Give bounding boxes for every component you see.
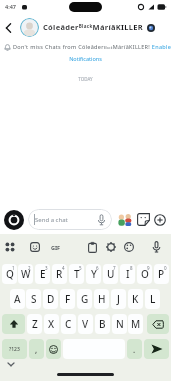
button[interactable]: ?123 [2,339,27,359]
button[interactable]: GIF [51,244,61,251]
button[interactable]: J [111,289,126,309]
staticText: B [99,317,106,331]
staticText: Z [32,317,38,331]
staticText: 9 [147,265,150,271]
button[interactable]: . [127,339,142,359]
button[interactable]: V [78,314,93,334]
button[interactable] [46,339,61,359]
button[interactable]: M [128,314,143,334]
button[interactable]: I [120,264,135,284]
staticText: F [65,292,71,306]
staticText: M [131,317,141,331]
staticText: ?123 [9,346,20,353]
button[interactable] [124,242,134,252]
button[interactable]: E [35,264,50,284]
button[interactable]: A [10,289,25,309]
staticText: D [47,292,55,306]
staticText: 4 [62,265,65,271]
button[interactable] [117,213,133,227]
staticText: 5 [79,265,82,271]
staticText: R [56,267,63,281]
staticText: TODAY [0,76,171,82]
button[interactable]: L [145,289,160,309]
staticText: P [158,267,165,281]
staticText: C [65,317,72,331]
staticText: Send a chat [35,216,68,224]
staticText: Y [91,267,97,281]
staticText: I [126,267,130,281]
button[interactable]: D [43,289,58,309]
button[interactable] [137,213,150,226]
staticText: Notifications [0,55,171,62]
staticText: Q [6,267,14,281]
button[interactable] [97,214,106,226]
button[interactable] [88,242,97,253]
button[interactable]: G [77,289,92,309]
staticText: X [48,317,55,331]
button[interactable]: S [26,289,41,309]
staticText: 4:47 [5,3,16,10]
staticText: S [31,292,37,306]
button[interactable]: K [128,289,143,309]
staticText: K [132,292,139,306]
staticText: 0 [164,265,167,271]
button[interactable]: H [94,289,109,309]
button[interactable]: Don't miss Chats from CóleâderBlackMáríā… [0,40,171,70]
button[interactable] [2,314,25,334]
button[interactable]: , [29,339,44,359]
staticText: U [107,267,115,281]
staticText: 1 [12,265,15,271]
button[interactable] [5,23,12,33]
staticText: 8 [130,265,133,271]
button[interactable]: Q [2,264,17,284]
staticText: 7 [113,265,116,271]
staticText: G [81,292,89,306]
button[interactable]: B [95,314,110,334]
staticText: . [133,344,136,355]
button[interactable]: W [18,264,33,284]
button[interactable] [147,314,169,334]
button[interactable] [144,339,169,359]
staticText: E [40,267,46,281]
staticText: 2 [28,265,31,271]
staticText: 6 [96,265,99,271]
button[interactable]: F [60,289,75,309]
button[interactable] [154,214,166,226]
button[interactable]: Send a chat [28,209,112,230]
staticText: W [21,267,31,281]
button[interactable]: N [112,314,127,334]
staticText: V [82,317,89,331]
button[interactable]: Z [27,314,42,334]
staticText: T [74,267,80,281]
staticText: CóleâderBlackMáríāKILLER [43,22,143,32]
button[interactable]: R [52,264,67,284]
staticText: O [141,267,149,281]
button[interactable]: X [44,314,59,334]
button[interactable]: P [154,264,169,284]
button[interactable] [30,242,40,252]
staticText: L [150,292,156,306]
button[interactable] [106,242,116,252]
button[interactable]: Y [86,264,101,284]
button[interactable] [152,241,161,253]
staticText: H [98,292,106,306]
button[interactable] [5,242,15,252]
staticText: 3 [45,265,48,271]
staticText: A [14,292,21,306]
button[interactable] [20,18,39,37]
staticText: N [116,317,124,331]
staticText: Don't miss Chats from CóleâderBlackMáríā… [13,43,171,50]
button[interactable]: O [137,264,152,284]
button[interactable]: T [69,264,84,284]
button[interactable]: U [103,264,118,284]
button[interactable]: C [61,314,76,334]
staticText: J [117,292,120,306]
button[interactable] [4,210,24,230]
staticText: , [35,344,38,355]
